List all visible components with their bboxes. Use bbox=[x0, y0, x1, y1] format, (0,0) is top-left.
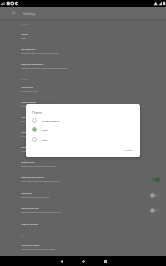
staticText: Keep only audio on last stream bbox=[21, 196, 50, 199]
button[interactable]: Save audio bbox=[0, 188, 166, 203]
button[interactable]: Use built-in player bbox=[0, 240, 166, 255]
staticText: Light bbox=[21, 37, 26, 40]
staticText: Set the home page bbox=[21, 90, 39, 93]
button[interactable]: Dark bbox=[26, 135, 140, 144]
button[interactable]: Light bbox=[26, 125, 140, 134]
staticText: Browser bbox=[21, 78, 29, 81]
button[interactable]: User agent bbox=[0, 112, 166, 127]
staticText: General bbox=[21, 23, 29, 26]
button[interactable]: Pin protection bbox=[0, 44, 166, 59]
staticText: Settings for device behaviour like locki… bbox=[21, 52, 59, 55]
staticText: Light bbox=[42, 128, 48, 131]
button[interactable]: AdBlock Settings bbox=[0, 218, 166, 231]
button[interactable]: CANCEL bbox=[122, 148, 135, 153]
button[interactable]: System default bbox=[26, 116, 140, 125]
staticText: Allow javascript to run on web pages bbox=[21, 150, 55, 153]
staticText: Save audio bbox=[21, 192, 33, 195]
button[interactable]: Search engine bbox=[0, 97, 166, 112]
staticText: User agent bbox=[21, 116, 33, 119]
staticText: Block images bbox=[21, 131, 35, 134]
staticText: Pin protection bbox=[21, 48, 36, 51]
staticText: Browser type bbox=[21, 161, 35, 164]
button[interactable]: Download destination bbox=[0, 59, 166, 74]
button[interactable]: Navigate up bbox=[10, 9, 18, 17]
button[interactable]: Home bbox=[72, 256, 94, 266]
staticText: Always download information on top level bbox=[21, 180, 60, 183]
staticText: Use built-in player bbox=[21, 244, 40, 247]
staticText: Clear data on exit bbox=[21, 207, 39, 210]
staticText: Theme bbox=[21, 33, 29, 36]
button[interactable]: Browser type bbox=[0, 157, 166, 172]
staticText: Search engine bbox=[21, 101, 36, 104]
staticText: Mobile browser/phone/tablet/TV mode bbox=[21, 165, 57, 168]
button[interactable]: Download with popup bbox=[0, 172, 166, 187]
staticText: Set custom user agent for browser bbox=[21, 120, 53, 123]
staticText: AdBlock Settings bbox=[21, 223, 39, 226]
button[interactable]: Clear data on exit bbox=[0, 203, 166, 218]
staticText: Theme bbox=[32, 111, 43, 115]
staticText: System default bbox=[42, 119, 60, 122]
staticText: Choose your default search engine bbox=[21, 105, 53, 108]
staticText: Download with popup bbox=[21, 176, 44, 179]
staticText: Use internal player when play a video bbox=[21, 248, 55, 251]
button[interactable]: Block images bbox=[0, 127, 166, 142]
button[interactable]: Back bbox=[50, 256, 72, 266]
staticText: Settings bbox=[23, 11, 36, 16]
staticText: Remove browser history and all data on e… bbox=[21, 211, 61, 214]
staticText: Enable javascript bbox=[21, 146, 39, 149]
button[interactable]: Theme bbox=[0, 29, 166, 44]
staticText: Home page bbox=[21, 86, 33, 89]
button[interactable]: Recent apps bbox=[94, 256, 116, 266]
staticText: Download destination bbox=[21, 63, 44, 66]
staticText: Do not load images on the web pages bbox=[21, 135, 56, 138]
staticText: /storage/emulated/0/Download/Private Dow… bbox=[21, 67, 68, 70]
button[interactable]: Home page bbox=[0, 82, 166, 97]
staticText: Dark bbox=[42, 138, 48, 141]
staticText: Files bbox=[21, 235, 26, 238]
button[interactable]: Enable javascript bbox=[0, 142, 166, 157]
staticText: CANCEL bbox=[124, 149, 133, 152]
